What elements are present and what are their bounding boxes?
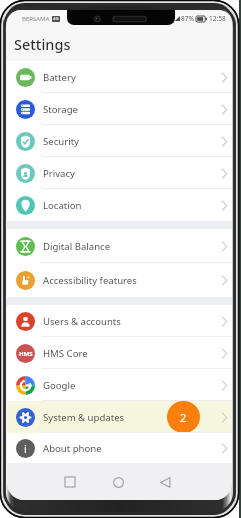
staticText: i xyxy=(24,441,27,456)
button[interactable]: HMS xyxy=(7,337,232,369)
staticText: 2 xyxy=(180,410,187,425)
staticText: 87% xyxy=(181,14,194,23)
staticText: Battery xyxy=(43,71,76,84)
button[interactable]: Digital Balance xyxy=(7,229,232,263)
button[interactable]: i xyxy=(7,433,232,463)
button[interactable]: Privacy xyxy=(7,157,232,189)
staticText: Privacy xyxy=(43,167,75,180)
staticText: 4G xyxy=(53,16,59,22)
button[interactable]: Recents xyxy=(61,473,79,491)
staticText: BERSAMA xyxy=(22,15,50,23)
staticText: Settings xyxy=(14,34,71,54)
button[interactable]: Users & accounts xyxy=(7,305,232,337)
staticText: Digital Balance xyxy=(43,240,111,253)
staticText: HMS xyxy=(19,350,33,358)
button[interactable]: Google xyxy=(7,369,232,401)
button[interactable]: Home xyxy=(109,473,127,491)
staticText: Storage xyxy=(43,103,78,116)
staticText: 12:58 xyxy=(209,14,226,23)
button[interactable]: Back xyxy=(156,473,174,491)
staticText: System & updates xyxy=(43,411,125,424)
button[interactable]: Location xyxy=(7,189,232,221)
staticText: HMS Core xyxy=(43,347,88,360)
staticText: Users & accounts xyxy=(43,315,121,328)
button[interactable]: Battery xyxy=(7,61,232,93)
staticText: Google xyxy=(43,379,76,392)
button[interactable]: System & updates xyxy=(7,401,232,433)
staticText: Security xyxy=(43,135,80,148)
button[interactable]: Storage xyxy=(7,93,232,125)
button[interactable]: Accessibility features xyxy=(7,263,232,297)
button[interactable]: Security xyxy=(7,125,232,157)
staticText: Location xyxy=(43,199,82,212)
staticText: Accessibility features xyxy=(43,274,137,287)
staticText: About phone xyxy=(43,442,102,455)
